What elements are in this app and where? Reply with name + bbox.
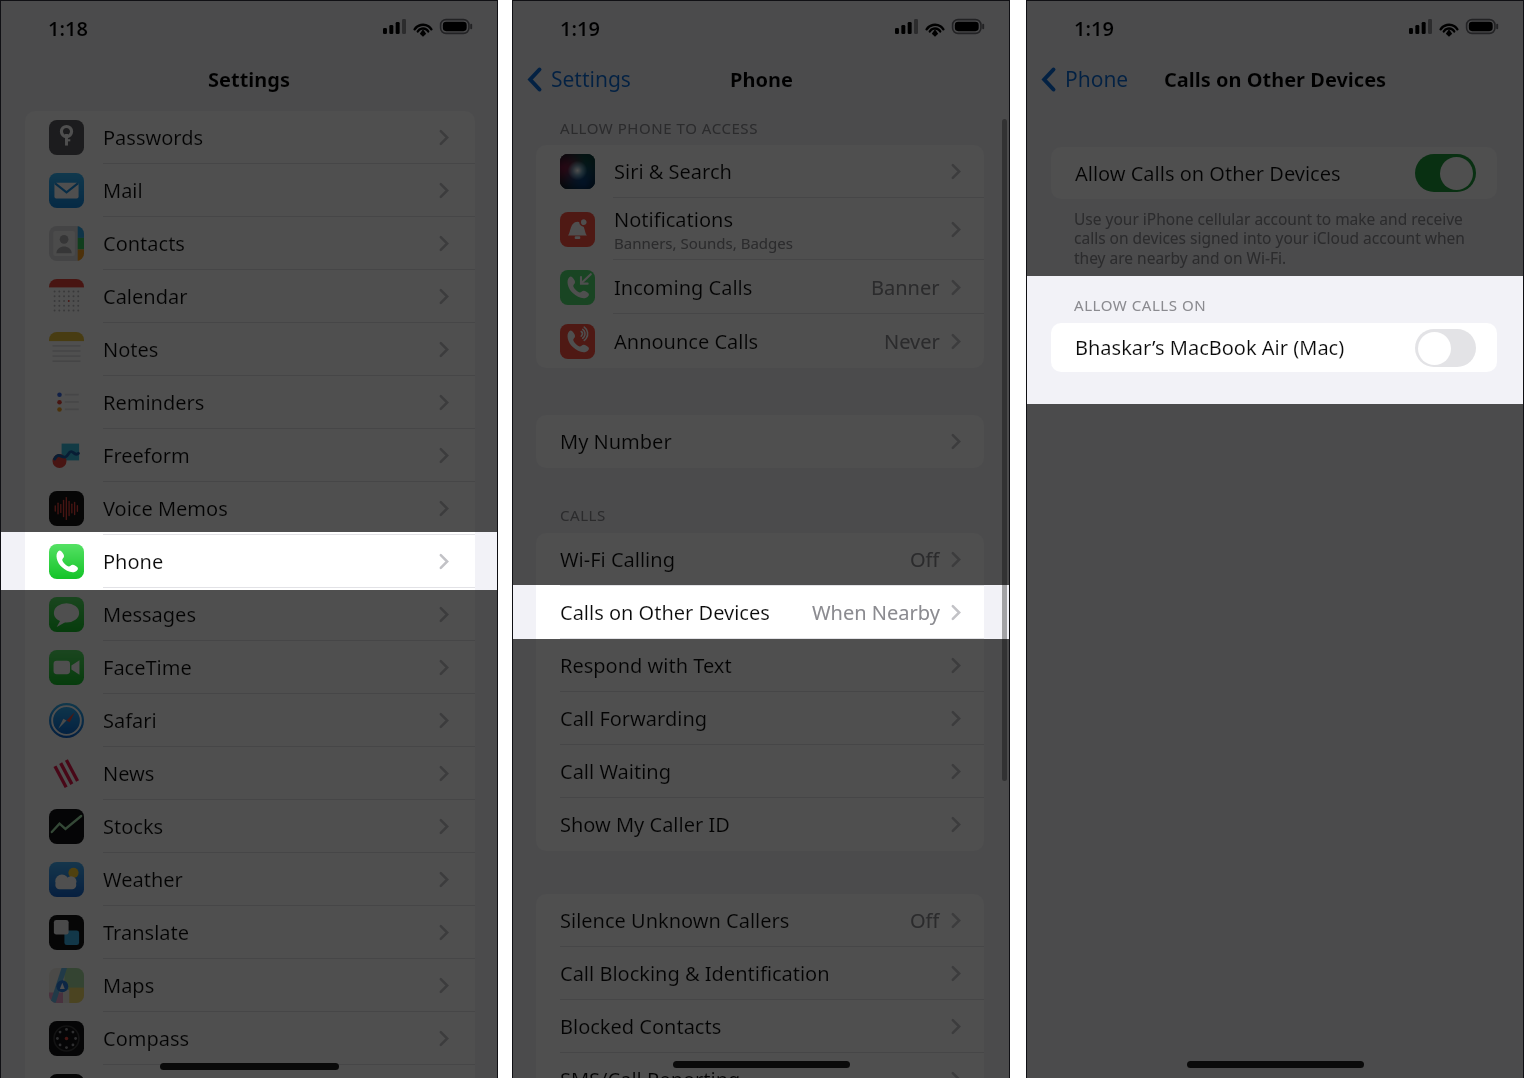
button[interactable]: Stocks <box>25 800 475 853</box>
staticText: Off <box>910 907 940 934</box>
staticText: Contacts <box>103 230 185 257</box>
staticText: Incoming Calls <box>614 274 753 301</box>
staticText: Off <box>910 546 940 573</box>
button[interactable]: Mail <box>25 164 475 217</box>
button[interactable]: Phone <box>25 535 475 588</box>
staticText: Settings <box>551 65 631 94</box>
staticText: Passwords <box>103 124 204 151</box>
button[interactable]: Back to Settings <box>524 65 634 94</box>
staticText: Notes <box>103 336 159 363</box>
staticText: ALLOW PHONE TO ACCESS <box>560 118 758 138</box>
staticText: Call Waiting <box>560 758 671 785</box>
button[interactable]: My Number <box>536 415 984 468</box>
button[interactable]: Respond with Text <box>536 639 984 692</box>
button[interactable]: Call Waiting <box>536 745 984 798</box>
button[interactable]: Bhaskar’s MacBook Air (Mac) <box>1051 323 1497 372</box>
button[interactable]: Turn off <box>1415 154 1476 192</box>
staticText: When Nearby <box>812 599 940 626</box>
button[interactable]: Contacts <box>25 217 475 270</box>
staticText: Messages <box>103 601 196 628</box>
staticText: 1:19 <box>1074 15 1114 42</box>
button[interactable]: Wi-Fi Calling <box>536 533 984 586</box>
button[interactable]: Notifications <box>536 198 984 260</box>
button[interactable]: Voice Memos <box>25 482 475 535</box>
staticText: Banner <box>871 274 940 301</box>
staticText: 1:18 <box>48 15 88 42</box>
staticText: Calendar <box>103 283 188 310</box>
staticText: Allow Calls on Other Devices <box>1075 160 1341 187</box>
staticText: SMS/Call Reporting <box>560 1066 741 1078</box>
staticText: My Number <box>560 428 672 455</box>
staticText: Stocks <box>103 813 164 840</box>
staticText: 1:19 <box>560 15 600 42</box>
button[interactable]: Incoming Calls <box>536 260 984 314</box>
button[interactable]: Weather <box>25 853 475 906</box>
button[interactable]: Show My Caller ID <box>536 798 984 851</box>
staticText: Reminders <box>103 389 205 416</box>
button[interactable]: Blocked Contacts <box>536 1000 984 1053</box>
button[interactable]: Calls on Other Devices <box>536 586 984 639</box>
staticText: Phone <box>1065 65 1129 94</box>
staticText: Show My Caller ID <box>560 811 730 838</box>
button[interactable]: Notes <box>25 323 475 376</box>
button[interactable]: Safari <box>25 694 475 747</box>
staticText: Voice Memos <box>103 495 228 522</box>
staticText: Calls on Other Devices <box>560 599 770 626</box>
staticText: Translate <box>103 919 190 946</box>
staticText: Settings <box>208 66 290 93</box>
button[interactable]: Call Blocking & Identification <box>536 947 984 1000</box>
button[interactable]: Allow Calls on Other Devices <box>1051 147 1497 199</box>
staticText: Announce Calls <box>614 328 759 355</box>
button[interactable]: Passwords <box>25 111 475 164</box>
staticText: Safari <box>103 707 157 734</box>
staticText: Bhaskar’s MacBook Air (Mac) <box>1075 334 1345 361</box>
staticText: Phone <box>730 66 793 93</box>
staticText: CALLS <box>560 505 606 525</box>
button[interactable]: News <box>25 747 475 800</box>
button[interactable]: Translate <box>25 906 475 959</box>
staticText: Siri & Search <box>614 158 732 185</box>
staticText: Silence Unknown Callers <box>560 907 790 934</box>
staticText: Banners, Sounds, Badges <box>614 233 793 253</box>
button[interactable]: Compass <box>25 1012 475 1065</box>
staticText: ALLOW CALLS ON <box>1074 295 1207 315</box>
button[interactable]: Maps <box>25 959 475 1012</box>
staticText: Call Forwarding <box>560 705 708 732</box>
button[interactable]: Messages <box>25 588 475 641</box>
button[interactable]: Silence Unknown Callers <box>536 894 984 947</box>
staticText: Respond with Text <box>560 652 732 679</box>
staticText: Maps <box>103 972 155 999</box>
staticText: Call Blocking & Identification <box>560 960 830 987</box>
button[interactable]: SMS/Call Reporting <box>536 1053 984 1078</box>
staticText: Blocked Contacts <box>560 1013 722 1040</box>
button[interactable]: Turn on <box>1415 329 1476 367</box>
staticText: Freeform <box>103 442 190 469</box>
button[interactable]: Freeform <box>25 429 475 482</box>
staticText: Wi-Fi Calling <box>560 546 675 573</box>
button[interactable]: Reminders <box>25 376 475 429</box>
button[interactable]: Announce Calls <box>536 314 984 368</box>
staticText: Calls on Other Devices <box>1164 66 1387 93</box>
staticText: Never <box>884 328 940 355</box>
button[interactable]: Call Forwarding <box>536 692 984 745</box>
staticText: Compass <box>103 1025 190 1052</box>
staticText: News <box>103 760 155 787</box>
button[interactable]: Measure <box>25 1065 475 1078</box>
staticText: Use your iPhone cellular account to make… <box>1074 208 1497 269</box>
staticText: Weather <box>103 866 183 893</box>
button[interactable]: Siri & Search <box>536 145 984 198</box>
button[interactable]: Calendar <box>25 270 475 323</box>
staticText: Phone <box>103 548 164 575</box>
staticText: Notifications <box>614 206 733 233</box>
staticText: Mail <box>103 177 143 204</box>
button[interactable]: FaceTime <box>25 641 475 694</box>
button[interactable]: Back to Phone <box>1038 65 1132 94</box>
staticText: FaceTime <box>103 654 192 681</box>
